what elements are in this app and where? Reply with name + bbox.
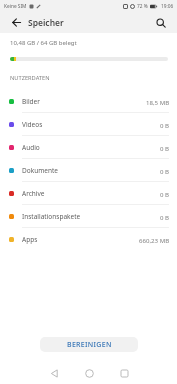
staticText: Dokumente (22, 166, 58, 175)
button[interactable]: BEREINIGEN (40, 337, 138, 352)
staticText: 0 B (160, 144, 170, 152)
staticText: 0 B (160, 167, 170, 175)
button[interactable]: Apps (0, 228, 177, 251)
button[interactable] (111, 362, 137, 384)
button[interactable]: Dokumente (0, 159, 177, 182)
button[interactable] (0, 12, 28, 33)
staticText: Audio (22, 143, 40, 152)
staticText: Archive (22, 189, 45, 198)
staticText: 0 B (160, 121, 170, 129)
button[interactable]: Videos (0, 113, 177, 136)
staticText: Bilder (22, 97, 40, 106)
button[interactable] (41, 362, 67, 384)
staticText: Videos (22, 120, 43, 129)
button[interactable]: Installationspakete (0, 205, 177, 228)
staticText: 0 B (160, 190, 170, 198)
staticText: 19:06 (161, 3, 174, 10)
staticText: 18,5 MB (146, 98, 170, 106)
staticText: 10,48 GB / 64 GB belegt (10, 39, 77, 47)
staticText: Keine SIM (4, 3, 27, 10)
button[interactable]: Bilder (0, 90, 177, 113)
button[interactable] (145, 12, 177, 33)
staticText: Installationspakete (22, 212, 81, 221)
staticText: BEREINIGEN (67, 340, 112, 350)
staticText: Speicher (28, 17, 64, 29)
staticText: NUTZERDATEN (10, 74, 50, 82)
staticText: 72 % (137, 3, 148, 10)
button[interactable] (76, 362, 102, 384)
button[interactable]: Archive (0, 182, 177, 205)
staticText: 660,23 MB (139, 236, 170, 244)
button[interactable]: Audio (0, 136, 177, 159)
staticText: Apps (22, 235, 38, 244)
staticText: 0 B (160, 213, 170, 221)
